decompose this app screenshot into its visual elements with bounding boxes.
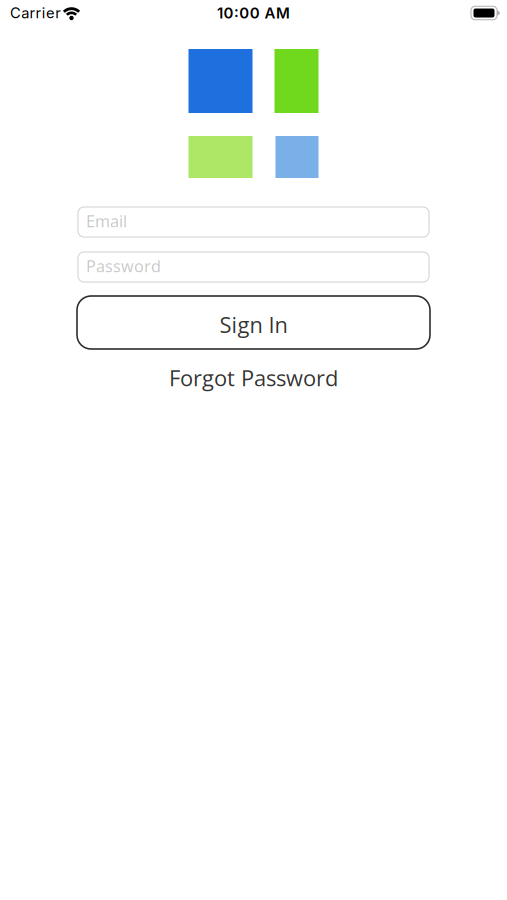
button[interactable]: Email text field (78, 207, 429, 237)
button[interactable]: Sign In (77, 296, 430, 349)
staticText: Forgot Password (169, 363, 338, 393)
staticText: Password (86, 255, 161, 277)
button[interactable]: Password text field (78, 252, 429, 282)
staticText: 10:00 AM (217, 4, 290, 22)
button[interactable]: Forgot Password (169, 363, 338, 393)
staticText: Email (86, 210, 127, 232)
staticText: Sign In (219, 310, 287, 339)
staticText: Carrier (10, 4, 61, 22)
